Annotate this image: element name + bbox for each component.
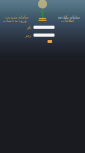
staticText: نام bbox=[26, 25, 30, 29]
staticText: سامانه یکپارچه bbox=[57, 15, 79, 19]
staticText: رمز bbox=[24, 33, 30, 37]
staticText: اطلاعات bbox=[60, 18, 73, 23]
staticText: سامانه مدیریت bbox=[4, 15, 27, 19]
staticText: ورود به حساب bbox=[2, 18, 26, 23]
button[interactable] bbox=[47, 40, 52, 43]
